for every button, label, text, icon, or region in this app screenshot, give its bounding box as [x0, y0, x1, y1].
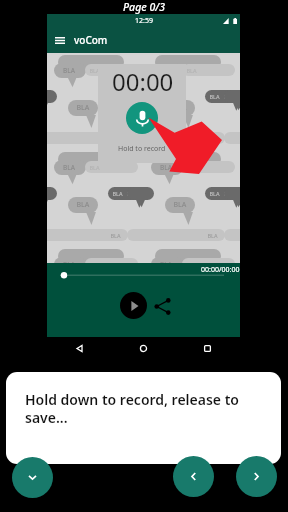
- button[interactable]: Next: [236, 456, 277, 497]
- staticText: 12:59: [135, 16, 153, 26]
- staticText: Hold down to record, release to save...: [25, 390, 241, 427]
- button[interactable]: Hold down to record, release to save...: [6, 372, 281, 464]
- button[interactable]: Collapse: [12, 457, 53, 498]
- button[interactable]: Play: [120, 292, 147, 319]
- staticText: voCom: [74, 33, 108, 47]
- button[interactable]: Record: [126, 102, 158, 134]
- other: Home: [139, 344, 148, 353]
- other: Back: [75, 344, 84, 353]
- other: Recents: [203, 344, 212, 353]
- staticText: Page 0/3: [123, 0, 165, 14]
- staticText: 00:00: [112, 65, 174, 98]
- button[interactable]: Previous: [173, 456, 214, 497]
- button[interactable]: Share: [152, 296, 172, 316]
- staticText: 00:00/00:00: [201, 265, 240, 275]
- staticText: Hold to record: [118, 144, 166, 154]
